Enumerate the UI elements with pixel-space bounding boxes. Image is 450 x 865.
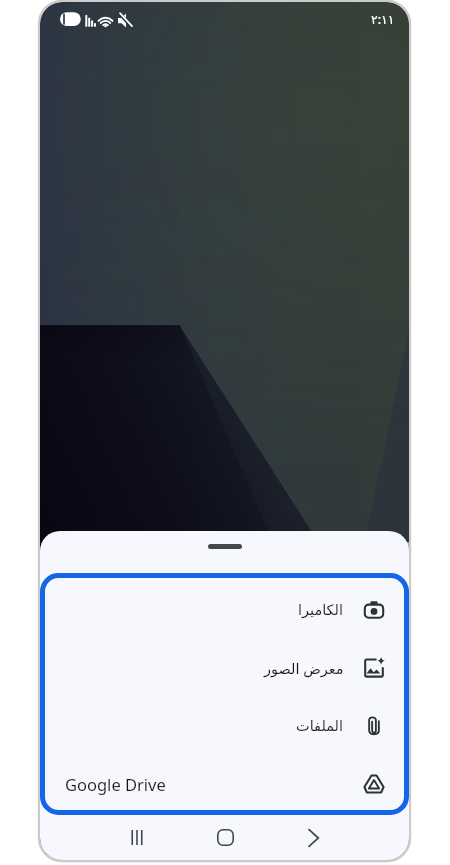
button[interactable]: Home	[181, 815, 269, 860]
button[interactable]: معرض الصور	[40, 639, 409, 697]
button[interactable]: Recent apps	[92, 815, 181, 860]
button[interactable]: الملفات	[40, 697, 409, 755]
button[interactable]: الكاميرا	[40, 581, 409, 639]
staticText: ٢:١١	[371, 11, 395, 28]
staticText: الملفات	[296, 718, 344, 735]
button[interactable]: Google Drive	[40, 755, 409, 813]
button[interactable]: Back	[269, 815, 357, 860]
staticText: الكاميرا	[298, 602, 344, 619]
staticText: Google Drive	[65, 773, 166, 795]
staticText: معرض الصور	[264, 658, 344, 678]
